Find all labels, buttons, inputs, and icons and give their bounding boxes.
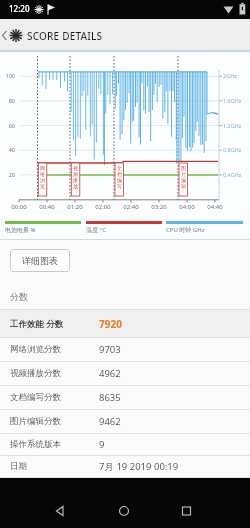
staticText: 览 (40, 183, 45, 189)
staticText: 辑 (181, 183, 186, 189)
staticText: 放 (73, 183, 78, 189)
button[interactable] (108, 495, 140, 527)
staticText: 网络浏览分数 (10, 344, 61, 355)
staticText: 02:40 (121, 203, 141, 211)
staticText: 工作效能 分数 (10, 318, 64, 330)
staticText: 操作系统版本 (10, 439, 61, 450)
staticText: 20 (0, 171, 15, 178)
button[interactable]: 网络浏览分数 (0, 338, 250, 362)
staticText: 2GHz (223, 72, 237, 79)
staticText: 04:40 (205, 203, 225, 211)
staticText: 文 (117, 165, 122, 171)
staticText: 7920 (99, 317, 122, 331)
staticText: 温度 °C (86, 226, 106, 234)
staticText: 60 (0, 122, 15, 129)
staticText: 文档编写分数 (10, 392, 61, 403)
staticText: 写 (117, 183, 122, 189)
button[interactable]: 文档编写分数 (0, 386, 250, 410)
button[interactable]: 日期 (0, 456, 250, 478)
staticText: 04:00 (177, 203, 197, 211)
staticText: 00:00 (9, 203, 29, 211)
staticText: 日期 (10, 461, 27, 472)
staticText: 电池电量 % (5, 226, 36, 234)
staticText: 03:20 (149, 203, 169, 211)
button[interactable]: 操作系统版本 (0, 434, 250, 456)
staticText: 100 (0, 72, 15, 79)
staticText: 络 (40, 171, 45, 177)
staticText: CPU 时钟 GHz (166, 226, 205, 234)
staticText: 9 (99, 438, 105, 451)
staticText: 9462 (99, 415, 121, 428)
staticText: 0.4GHz (223, 171, 242, 178)
staticText: 片 (181, 171, 186, 177)
staticText: 详细图表 (22, 255, 58, 266)
button[interactable]: 详细图表 (10, 249, 70, 272)
staticText: 4962 (99, 367, 121, 380)
button[interactable] (44, 495, 76, 527)
staticText: 7月 19 2019 00:19 (99, 460, 179, 473)
button[interactable]: 视频播放分数 (0, 362, 250, 386)
staticText: 档 (117, 171, 122, 177)
staticText: 分数 (10, 291, 28, 302)
staticText: 编 (181, 177, 186, 183)
staticText: 编 (117, 177, 122, 183)
button[interactable]: 工作效能 分数 (0, 310, 250, 338)
staticText: 40 (0, 146, 15, 153)
staticText: 01:20 (65, 203, 85, 211)
staticText: 0.8GHz (223, 146, 242, 153)
staticText: 图片编辑分数 (10, 416, 61, 427)
staticText: 8635 (99, 391, 121, 404)
staticText: 9703 (99, 343, 121, 356)
staticText: 网 (40, 165, 45, 171)
staticText: 1.6GHz (223, 97, 242, 104)
button[interactable] (170, 495, 202, 527)
staticText: 浏 (40, 177, 45, 183)
staticText: 播 (73, 177, 78, 183)
staticText: 12:20 (9, 3, 30, 14)
staticText: 00:40 (37, 203, 57, 211)
staticText: SCORE DETAILS (27, 29, 103, 43)
staticText: 频 (73, 171, 78, 177)
button[interactable]: 图片编辑分数 (0, 410, 250, 434)
staticText: 图 (181, 165, 186, 171)
staticText: 视频播放分数 (10, 368, 61, 379)
staticText: 视 (73, 165, 78, 171)
staticText: 02:00 (93, 203, 113, 211)
staticText: 80 (0, 97, 15, 104)
staticText: 1.2GHz (223, 122, 242, 129)
